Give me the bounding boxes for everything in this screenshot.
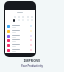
- staticText: IMPROVE: [0, 58, 64, 63]
- button[interactable]: [7, 49, 32, 53]
- button[interactable]: [7, 35, 32, 39]
- button[interactable]: [7, 25, 32, 29]
- button[interactable]: [7, 39, 32, 43]
- button[interactable]: [7, 30, 32, 34]
- button[interactable]: [7, 44, 32, 48]
- staticText: Your Productivity: [0, 64, 64, 67]
